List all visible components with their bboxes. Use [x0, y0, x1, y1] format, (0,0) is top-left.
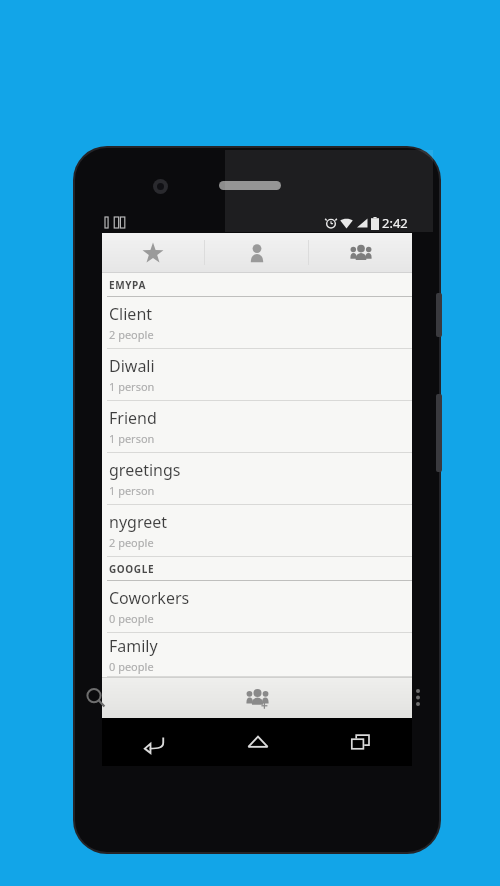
staticText: 1 person: [109, 431, 155, 446]
staticText: 0 people: [109, 659, 154, 674]
staticText: EMYPA: [109, 278, 146, 292]
button[interactable]: More options: [309, 677, 412, 718]
staticText: GOOGLE: [109, 562, 155, 576]
button[interactable]: Diwali: [102, 349, 412, 401]
button[interactable]: nygreet: [102, 505, 412, 557]
button[interactable]: Coworkers: [102, 581, 412, 633]
button[interactable]: Home: [206, 718, 309, 766]
staticText: 0 people: [109, 611, 154, 626]
button[interactable]: greetings: [102, 453, 412, 505]
button[interactable]: Search: [102, 677, 206, 718]
staticText: Client: [109, 303, 153, 325]
staticText: Family: [109, 635, 158, 657]
staticText: Diwali: [109, 355, 155, 377]
staticText: nygreet: [109, 511, 168, 533]
staticText: 2 people: [109, 535, 154, 550]
staticText: 2 people: [109, 327, 154, 342]
button[interactable]: Favorites: [102, 233, 204, 272]
button[interactable]: Add group: [206, 677, 309, 718]
staticText: 2:42: [382, 214, 408, 232]
button[interactable]: Back: [102, 718, 206, 766]
button[interactable]: Friend: [102, 401, 412, 453]
button[interactable]: Recents: [309, 718, 412, 766]
staticText: 1 person: [109, 379, 155, 394]
staticText: Coworkers: [109, 587, 190, 609]
staticText: greetings: [109, 459, 181, 481]
button[interactable]: Client: [102, 297, 412, 349]
button[interactable]: All contacts: [205, 233, 308, 272]
staticText: Friend: [109, 407, 157, 429]
button[interactable]: Family: [102, 633, 412, 677]
button[interactable]: Groups: [309, 233, 412, 272]
staticText: 1 person: [109, 483, 155, 498]
